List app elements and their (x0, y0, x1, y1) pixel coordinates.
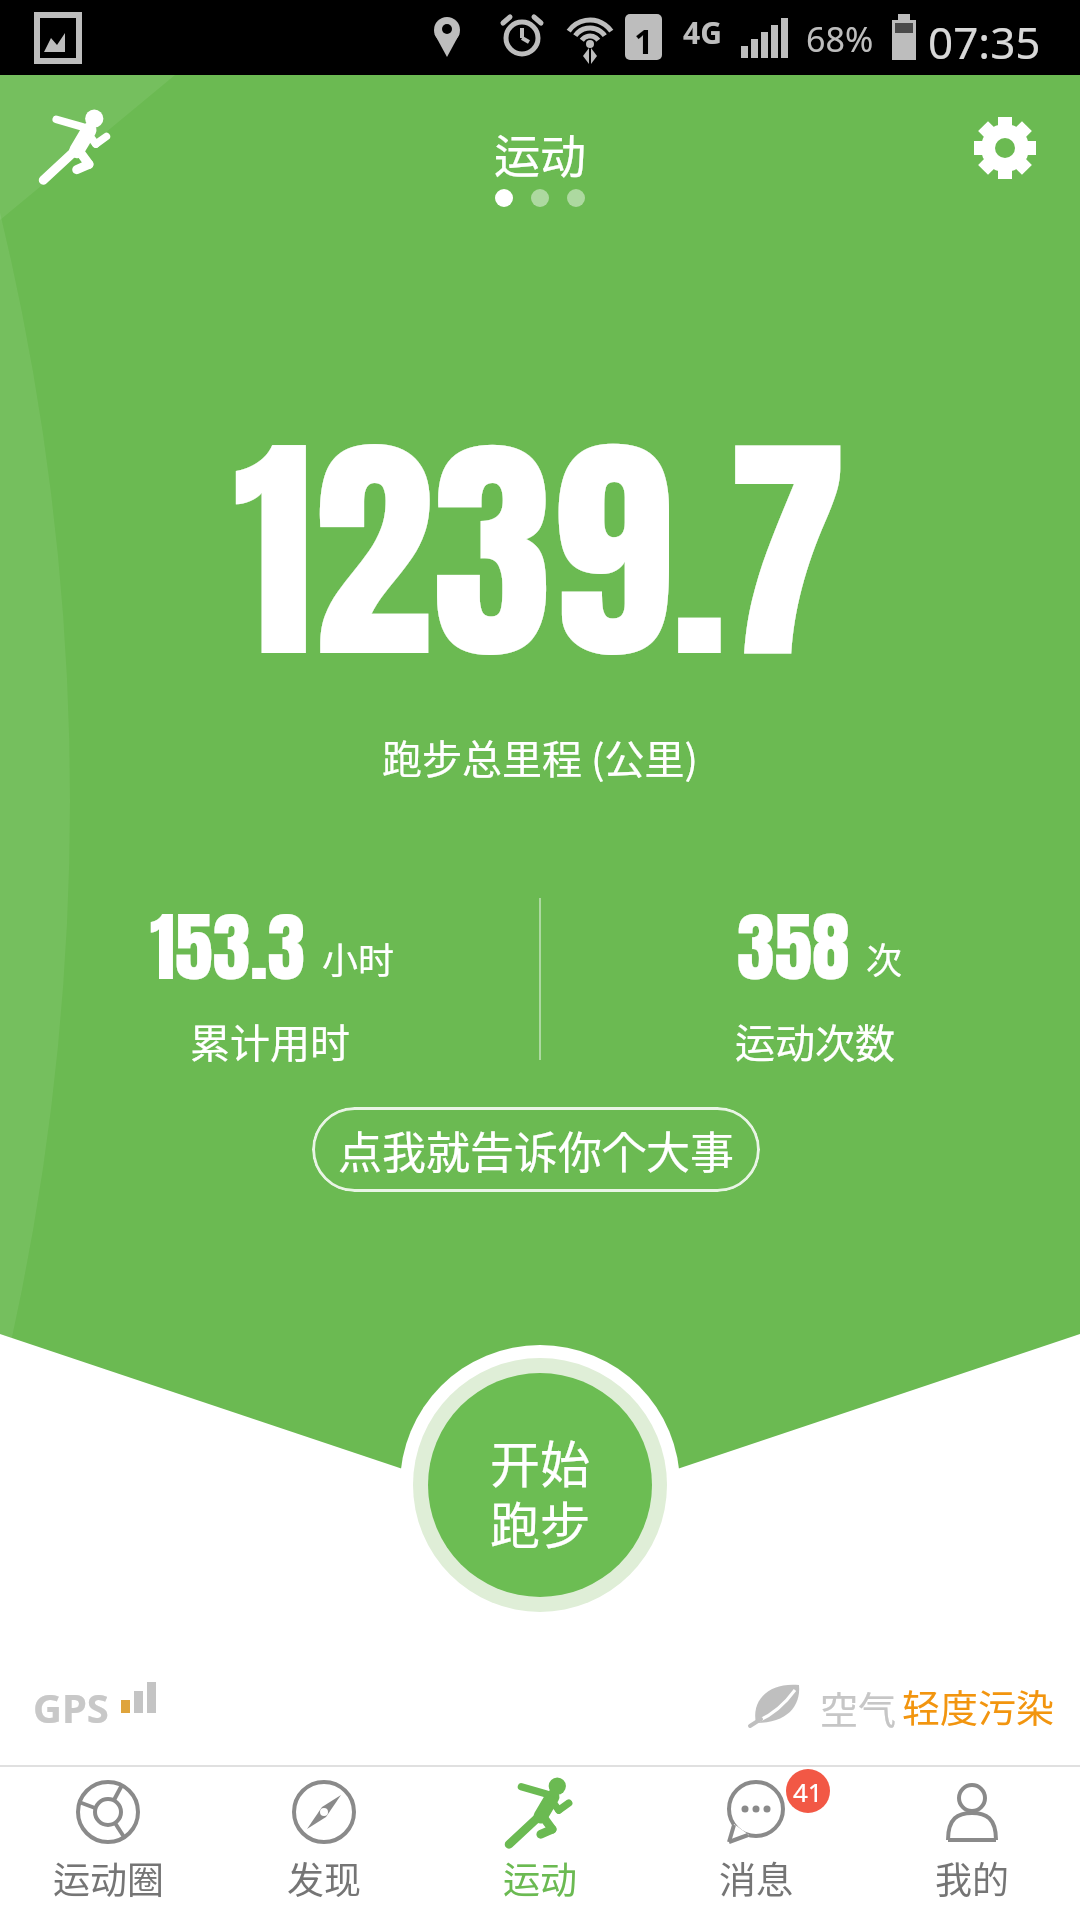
staticText: 次 (866, 932, 903, 984)
staticText: 运动 (494, 120, 586, 187)
staticText: 消息 (719, 1851, 793, 1905)
staticText: 运动 (503, 1851, 577, 1905)
staticText: 1 (634, 18, 654, 64)
staticText: 开始 跑步 (490, 1425, 590, 1558)
staticText: 跑步总里程 (公里) (382, 728, 698, 786)
button[interactable]: 运动圈 (0, 1765, 216, 1920)
staticText: 点我就告诉你个大事 (338, 1118, 734, 1182)
staticText: 运动次数 (735, 1012, 895, 1070)
staticText: 358 (737, 890, 850, 990)
staticText: 68% (806, 16, 874, 62)
staticText: 小时 (322, 932, 395, 984)
staticText: 07:35 (928, 12, 1041, 72)
staticText: 空气 (820, 1680, 897, 1735)
staticText: 153.3 (150, 890, 306, 990)
button[interactable]: 运动 (432, 1765, 648, 1920)
staticText: 41 (793, 1774, 823, 1809)
staticText: 累计用时 (190, 1012, 350, 1070)
button[interactable]: 我的 (864, 1765, 1080, 1920)
button[interactable]: 点我就告诉你个大事 (312, 1107, 760, 1192)
button[interactable] (30, 100, 122, 192)
button[interactable]: 开始 跑步 (400, 1345, 680, 1625)
staticText: 我的 (935, 1851, 1009, 1905)
staticText: 4G (683, 12, 722, 53)
button[interactable]: 发现 (216, 1765, 432, 1920)
staticText: 1239.7 (233, 368, 847, 732)
staticText: 发现 (287, 1851, 361, 1905)
staticText: GPS (33, 1680, 109, 1734)
staticText: 轻度污染 (902, 1678, 1055, 1733)
button[interactable] (960, 102, 1052, 194)
button[interactable]: 消息 (648, 1765, 864, 1920)
staticText: 运动圈 (53, 1851, 164, 1905)
